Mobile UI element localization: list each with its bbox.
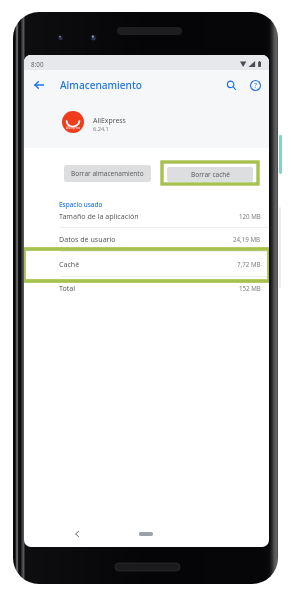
button[interactable]: Search (220, 74, 242, 96)
staticText: 8:00 (31, 60, 44, 69)
button[interactable]: Help (244, 74, 266, 96)
button[interactable]: Tamaño de la aplicación (24, 204, 269, 228)
staticText: AliExpress (93, 116, 126, 125)
button[interactable]: Back (69, 526, 85, 542)
staticText: Caché (59, 259, 80, 269)
staticText: 120 MB (239, 212, 261, 220)
button[interactable]: Borrar almacenamiento (64, 165, 151, 182)
staticText: 6.24.1 (93, 125, 109, 133)
staticText: Datos de usuario (59, 234, 116, 244)
staticText: ? (254, 81, 257, 90)
button[interactable]: Borrar caché (167, 167, 253, 182)
button[interactable]: Back (28, 74, 50, 96)
staticText: 24,19 MB (233, 235, 261, 243)
staticText: Tamaño de la aplicación (59, 211, 139, 221)
staticText: Almacenamiento (60, 78, 142, 92)
button[interactable]: Total (24, 276, 269, 300)
staticText: Borrar caché (191, 170, 230, 179)
button[interactable]: Caché (24, 252, 269, 276)
staticText: Espacio usado (59, 200, 103, 209)
staticText: 7,72 MB (237, 260, 261, 268)
staticText: Borrar almacenamiento (71, 169, 144, 178)
button[interactable]: Home (131, 526, 161, 542)
staticText: Total (59, 283, 76, 293)
staticText: 152 MB (239, 284, 261, 292)
staticText: AliExpress (66, 126, 81, 130)
button[interactable]: Datos de usuario (24, 227, 269, 251)
